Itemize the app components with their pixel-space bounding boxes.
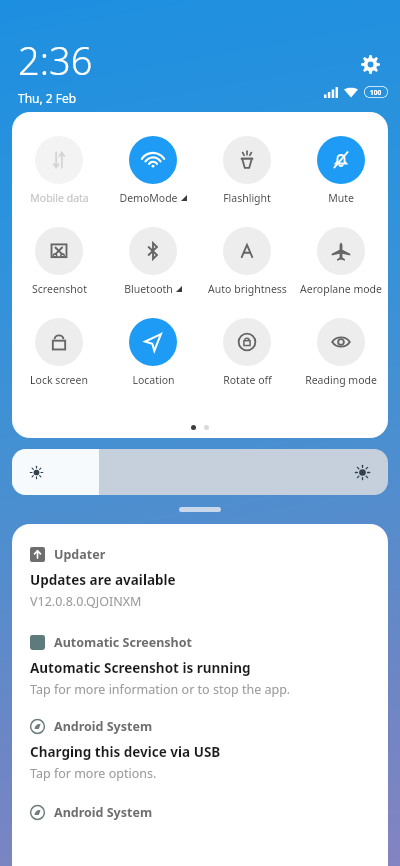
staticText: Updater — [54, 546, 106, 563]
staticText: V12.0.8.0.QJOINXM — [30, 593, 142, 610]
staticText: Tap for more options. — [30, 765, 157, 782]
staticText: Reading mode — [305, 373, 377, 387]
button[interactable]: Automatic Screenshot — [12, 634, 388, 698]
button[interactable]: Updater — [12, 546, 388, 610]
button[interactable]: Reading mode — [294, 316, 388, 389]
staticText: Android System — [54, 804, 153, 821]
staticText: Location — [132, 373, 175, 387]
button[interactable]: Settings — [354, 48, 386, 80]
staticText: Rotate off — [223, 373, 272, 387]
button[interactable]: Bluetooth — [106, 225, 200, 298]
staticText: Android System — [54, 718, 153, 735]
button[interactable]: Brightness — [12, 449, 388, 495]
staticText: Tap for more information or to stop the … — [30, 681, 291, 698]
staticText: Automatic Screenshot is running — [30, 659, 251, 677]
staticText: Aeroplane mode — [300, 282, 382, 296]
staticText: 100 — [370, 88, 382, 97]
button[interactable]: Screenshot — [12, 225, 106, 298]
staticText: Mute — [328, 191, 354, 205]
staticText: Screenshot — [32, 282, 87, 296]
staticText: Bluetooth — [124, 282, 173, 296]
button[interactable]: Location — [106, 316, 200, 389]
button[interactable]: Rotate off — [200, 316, 294, 389]
staticText: Auto brightness — [208, 282, 287, 296]
staticText: Automatic Screenshot — [54, 634, 192, 651]
staticText: Lock screen — [30, 373, 88, 387]
button[interactable]: Auto brightness — [200, 225, 294, 298]
staticText: Mobile data — [30, 191, 89, 205]
button[interactable]: Android System — [12, 718, 388, 782]
staticText: Flashlight — [223, 191, 271, 205]
staticText: Thu, 2 Feb — [18, 90, 77, 106]
button[interactable]: Lock screen — [12, 316, 106, 389]
staticText: 2:36 — [18, 34, 93, 86]
button[interactable]: Android System — [12, 804, 388, 821]
staticText: Charging this device via USB — [30, 743, 221, 761]
button[interactable]: Flashlight — [200, 134, 294, 207]
button[interactable]: Aeroplane mode — [294, 225, 388, 298]
button[interactable]: Mute — [294, 134, 388, 207]
button[interactable]: Mobile data — [12, 134, 106, 207]
button[interactable]: DemoMode — [106, 134, 200, 207]
staticText: DemoMode — [119, 191, 178, 205]
staticText: Updates are available — [30, 571, 176, 589]
